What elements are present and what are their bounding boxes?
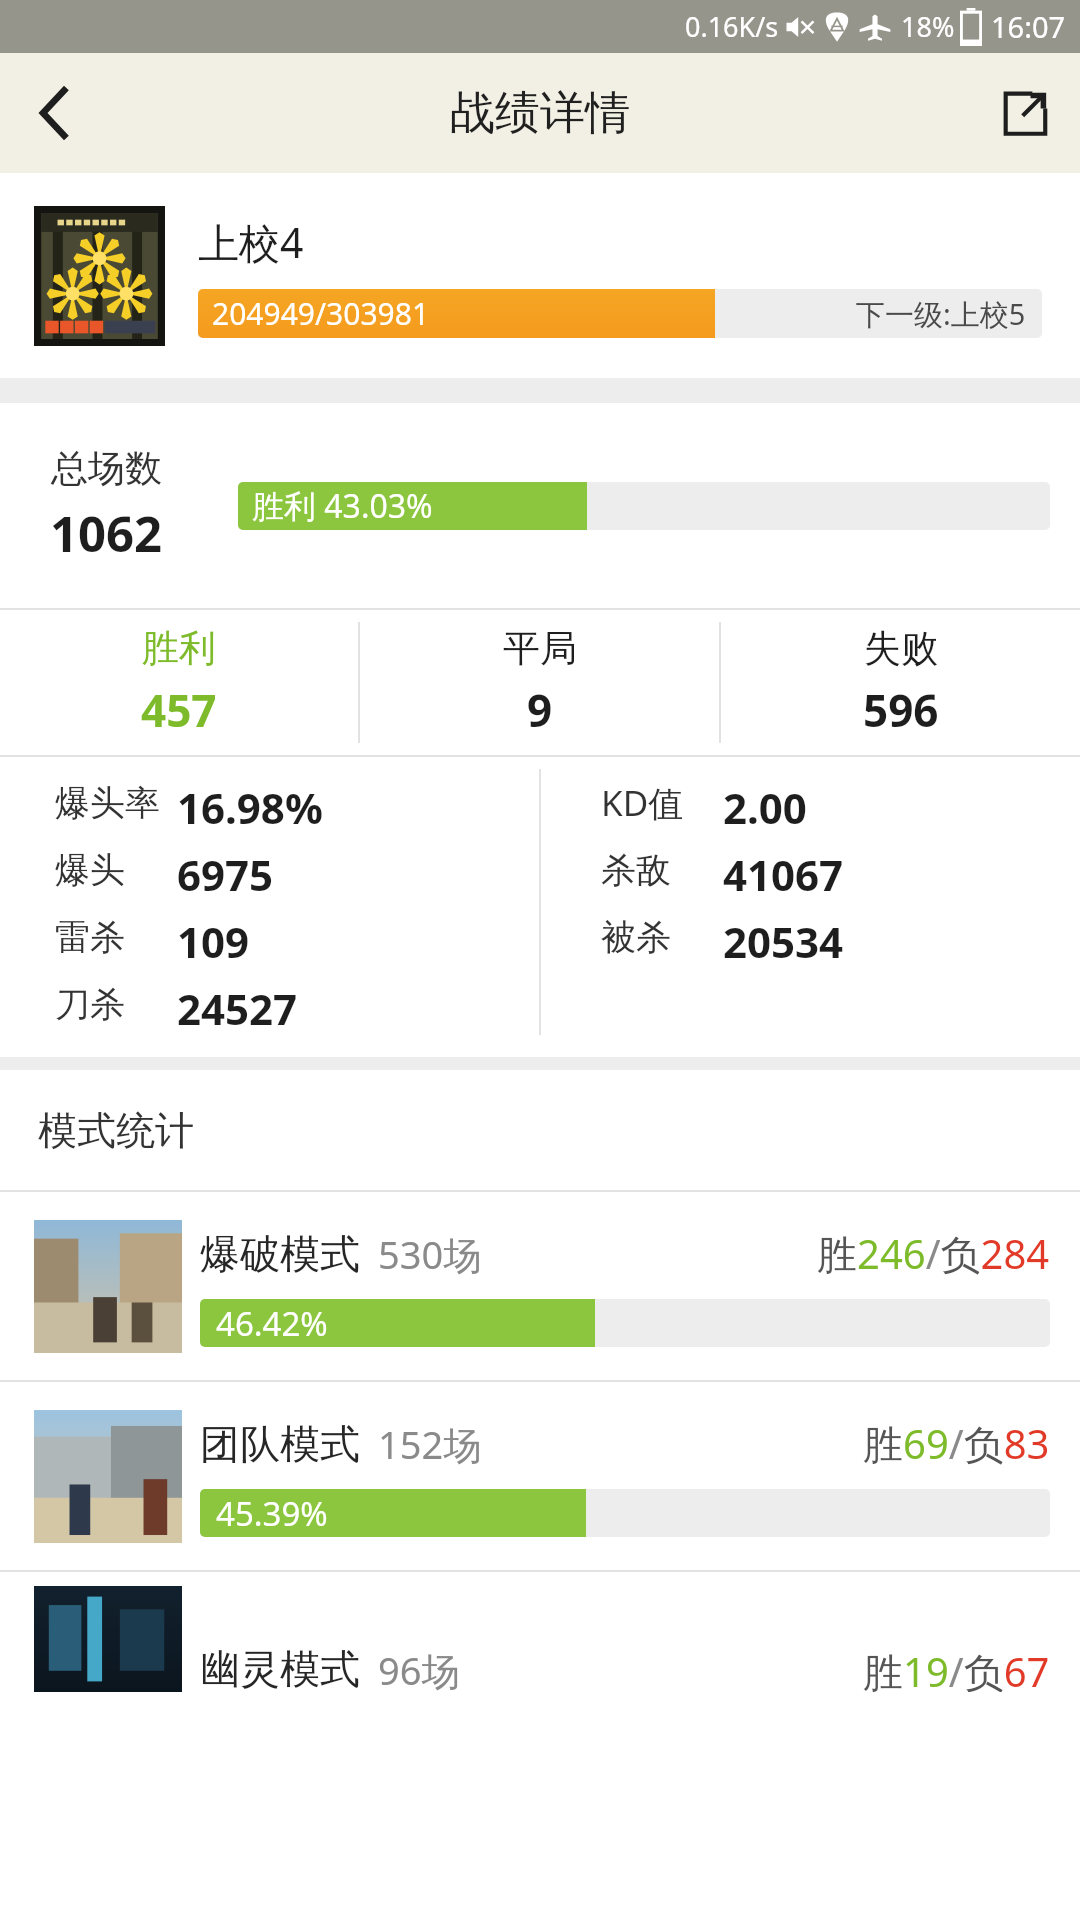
staticText: 胜69/负83 bbox=[863, 1416, 1050, 1471]
staticText: 24527 bbox=[177, 980, 298, 1027]
button[interactable]: 爆破模式 bbox=[0, 1192, 1080, 1380]
staticText: 45.39% bbox=[216, 1491, 328, 1536]
button[interactable]: 幽灵模式 bbox=[0, 1572, 1080, 1692]
staticText: 胜利 bbox=[142, 625, 216, 672]
staticText: 团队模式 bbox=[200, 1419, 360, 1469]
staticText: 模式统计 bbox=[38, 1106, 194, 1155]
staticText: 596 bbox=[863, 680, 939, 740]
staticText: 战绩详情 bbox=[450, 85, 630, 142]
button[interactable]: 总场数 bbox=[0, 403, 1080, 608]
staticText: 16.98% bbox=[177, 779, 323, 826]
staticText: 0.16K/s bbox=[685, 8, 779, 45]
staticText: 雷杀 bbox=[55, 915, 125, 959]
button[interactable]: 失败 bbox=[721, 610, 1080, 755]
button[interactable]: 胜利 bbox=[0, 610, 358, 755]
staticText: 109 bbox=[177, 913, 250, 960]
staticText: 530场 bbox=[378, 1228, 482, 1280]
staticText: 失败 bbox=[864, 625, 938, 672]
staticText: 457 bbox=[141, 680, 217, 740]
button[interactable]: 上校4 bbox=[0, 173, 1080, 378]
staticText: 18% bbox=[901, 8, 955, 45]
staticText: 1062 bbox=[50, 500, 163, 567]
staticText: 上校4 bbox=[198, 214, 304, 270]
button[interactable]: Share bbox=[970, 53, 1080, 173]
staticText: 爆破模式 bbox=[200, 1229, 360, 1279]
staticText: 幽灵模式 bbox=[200, 1644, 360, 1692]
staticText: 2.00 bbox=[723, 779, 807, 826]
staticText: 被杀 bbox=[601, 915, 671, 959]
staticText: 16:07 bbox=[991, 7, 1066, 46]
staticText: KD值 bbox=[601, 779, 684, 826]
staticText: 204949/303981 bbox=[212, 293, 430, 334]
staticText: 96场 bbox=[378, 1644, 460, 1692]
button[interactable]: 平局 bbox=[360, 610, 719, 755]
staticText: 6975 bbox=[177, 846, 274, 893]
staticText: 平局 bbox=[503, 625, 577, 672]
staticText: 总场数 bbox=[51, 445, 162, 492]
staticText: 152场 bbox=[378, 1418, 482, 1470]
staticText: 杀敌 bbox=[601, 848, 671, 892]
button[interactable]: 团队模式 bbox=[0, 1382, 1080, 1570]
staticText: 胜19/负67 bbox=[863, 1644, 1050, 1692]
staticText: 爆头 bbox=[55, 848, 125, 892]
button[interactable]: Back bbox=[0, 53, 110, 173]
staticText: 20534 bbox=[723, 913, 844, 960]
staticText: 9 bbox=[527, 680, 553, 740]
staticText: 46.42% bbox=[216, 1301, 328, 1346]
staticText: 下一级:上校5 bbox=[856, 294, 1026, 334]
staticText: 41067 bbox=[723, 846, 844, 893]
staticText: 刀杀 bbox=[55, 982, 125, 1026]
staticText: 胜246/负284 bbox=[817, 1226, 1050, 1281]
staticText: 爆头率 bbox=[55, 781, 160, 825]
staticText: 胜利 43.03% bbox=[252, 484, 433, 528]
